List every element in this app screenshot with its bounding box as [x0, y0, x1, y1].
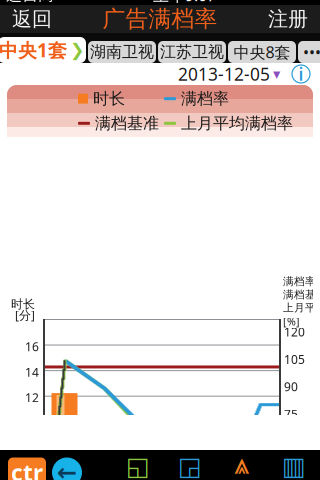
staticText: 时长 — [11, 297, 35, 312]
staticText: ▾ — [273, 66, 280, 82]
staticText: 6 — [32, 466, 39, 480]
staticText: 上午9:07 — [153, 0, 216, 6]
staticText: 45 — [284, 461, 298, 477]
button[interactable]: 返回 — [0, 2, 64, 36]
button[interactable]: CTR — [8, 457, 46, 480]
staticText: 2013-12-05 — [178, 62, 270, 85]
staticText: 8 — [32, 441, 39, 457]
staticText: 运营商 — [6, 0, 54, 5]
staticText: 16 — [25, 339, 39, 354]
staticText: 12 — [25, 390, 39, 406]
staticText: ◱ — [126, 452, 150, 480]
staticText: 江苏卫视 — [160, 42, 224, 62]
staticText: ← — [57, 459, 77, 480]
staticText: [分] — [15, 307, 35, 323]
staticText: 广告满档率 — [102, 5, 217, 33]
staticText: 返回 — [12, 7, 52, 31]
button[interactable]: 信息 — [292, 65, 310, 83]
staticText: 中央1套 — [0, 38, 67, 62]
button[interactable]: ▥ — [268, 452, 320, 480]
button[interactable]: ⩓ — [216, 452, 268, 480]
staticText: 90 — [284, 379, 298, 395]
staticText: 14 — [25, 364, 39, 380]
staticText: 75 — [284, 406, 298, 422]
staticText: 上月平均满档率 — [181, 113, 293, 133]
staticText: 120 — [284, 324, 305, 340]
button[interactable]: ◱ — [112, 452, 164, 480]
button[interactable]: 返回 — [52, 457, 82, 480]
staticText: [%] — [283, 314, 300, 328]
button[interactable]: 中央1套 — [0, 37, 86, 63]
button[interactable]: 注册 — [256, 2, 320, 36]
staticText: i — [298, 62, 303, 85]
staticText: 105 — [284, 351, 305, 367]
staticText: ❯ — [70, 40, 85, 60]
button[interactable]: ◲ — [164, 452, 216, 480]
button[interactable]: 湖南卫视 — [88, 41, 156, 63]
staticText: ▥ — [282, 452, 306, 480]
staticText: 上月平均满档率 — [283, 301, 320, 314]
staticText: 满档基准 — [95, 113, 159, 133]
staticText: ◲ — [178, 452, 202, 480]
button[interactable]: 中央8套 — [228, 41, 296, 63]
staticText: 满档率 — [181, 89, 229, 108]
staticText: 湖南卫视 — [90, 42, 154, 62]
staticText: 满档率 — [283, 275, 316, 288]
staticText: 时长 — [93, 89, 125, 108]
button[interactable]: 江苏卫视 — [158, 41, 226, 63]
staticText: ctr — [11, 457, 43, 480]
staticText: 满档基准 — [283, 288, 320, 301]
button[interactable]: 2013-12-05 — [174, 60, 284, 87]
staticText: ••• — [303, 41, 320, 63]
staticText: 注册 — [268, 7, 308, 31]
staticText: 中央8套 — [233, 41, 290, 63]
button[interactable]: ••• — [298, 41, 320, 63]
staticText: ⩓ — [233, 454, 251, 479]
